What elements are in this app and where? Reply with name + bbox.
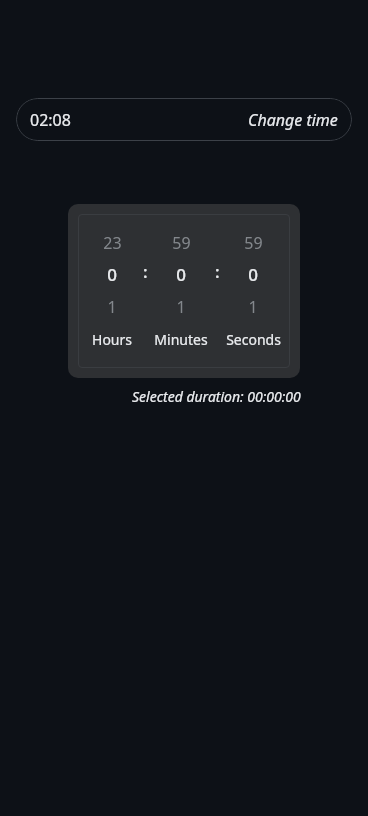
staticText: Hours	[92, 330, 132, 349]
staticText: 1	[107, 296, 117, 318]
button[interactable]: 59	[224, 232, 282, 349]
staticText: 0	[107, 263, 117, 286]
staticText: 0	[176, 263, 186, 286]
staticText: 59	[244, 232, 263, 254]
staticText: :	[143, 260, 148, 283]
staticText: Seconds	[226, 330, 281, 349]
button[interactable]: 59	[152, 232, 210, 349]
staticText: Change time	[248, 109, 338, 131]
staticText: Selected duration: 00:00:00	[132, 387, 301, 406]
staticText: :	[215, 260, 220, 283]
staticText: 1	[176, 296, 186, 318]
staticText: 02:08	[30, 109, 71, 131]
staticText: Minutes	[154, 330, 208, 349]
button[interactable]: 23	[86, 232, 138, 349]
staticText: 0	[248, 263, 258, 286]
staticText: 59	[172, 232, 191, 254]
staticText: 1	[248, 296, 258, 318]
staticText: 23	[103, 232, 122, 254]
button[interactable]: 02:08	[16, 98, 352, 141]
